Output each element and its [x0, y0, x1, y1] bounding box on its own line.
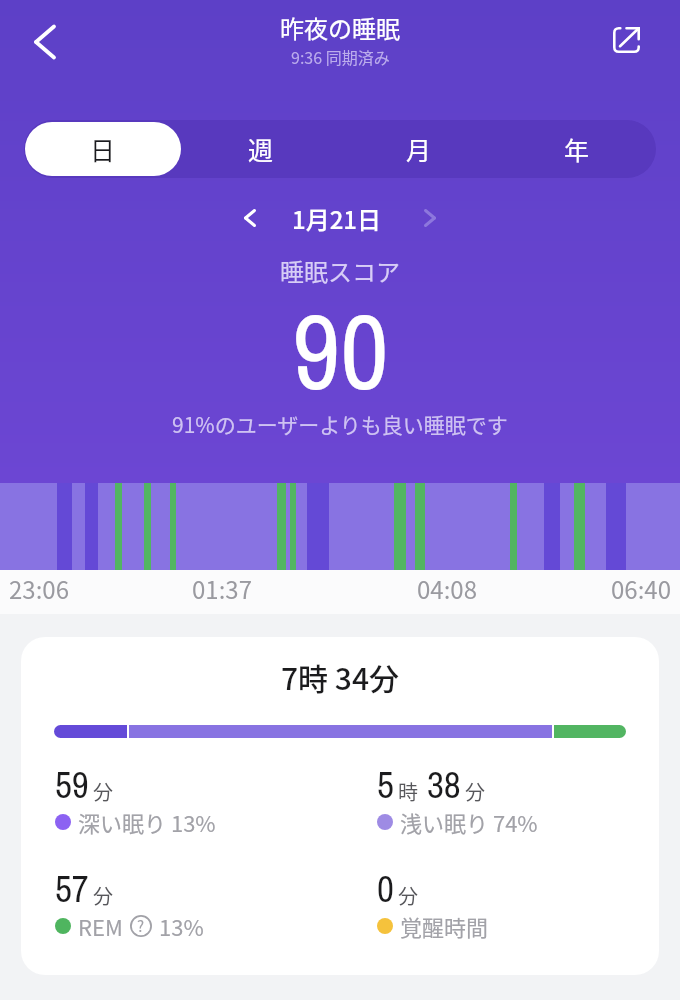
- staticText: 睡眠スコア: [280, 253, 400, 288]
- button[interactable]: 週: [183, 122, 339, 176]
- staticText: ?: [137, 915, 145, 937]
- staticText: 浅い眠り 74%: [400, 806, 538, 838]
- staticText: 分: [93, 881, 113, 910]
- staticText: 0: [377, 864, 394, 914]
- staticText: 04:08: [417, 571, 477, 606]
- staticText: 時: [398, 777, 418, 806]
- staticText: 7時 34分: [281, 655, 400, 698]
- button[interactable]: Back: [12, 10, 76, 74]
- staticText: 日: [90, 131, 116, 167]
- staticText: 年: [564, 131, 590, 167]
- staticText: 昨夜の睡眠: [280, 10, 400, 45]
- staticText: 06:40: [611, 571, 671, 606]
- staticText: 91%のユーザーよりも良い睡眠です: [172, 409, 508, 439]
- staticText: 59: [55, 760, 89, 810]
- staticText: 57: [55, 864, 89, 914]
- button[interactable]: Previous day: [228, 196, 272, 240]
- staticText: 分: [465, 777, 485, 806]
- button[interactable]: 日: [25, 122, 181, 176]
- staticText: 01:37: [192, 571, 252, 606]
- staticText: REM: [78, 910, 123, 942]
- button[interactable]: 月: [341, 122, 497, 176]
- staticText: 覚醒時間: [400, 910, 489, 942]
- button[interactable]: Share: [598, 12, 654, 68]
- staticText: 月: [406, 131, 432, 167]
- staticText: 深い眠り 13%: [78, 806, 216, 838]
- staticText: 13%: [159, 910, 204, 942]
- staticText: 分: [93, 777, 113, 806]
- staticText: 週: [248, 131, 274, 167]
- button[interactable]: Next day: [408, 196, 452, 240]
- staticText: 分: [398, 881, 418, 910]
- staticText: 1月21日: [292, 201, 382, 236]
- staticText: 5: [377, 760, 394, 810]
- staticText: 23:06: [9, 571, 69, 606]
- staticText: 9:36 同期済み: [291, 45, 390, 68]
- staticText: 38: [427, 760, 461, 810]
- staticText: 90: [292, 279, 389, 422]
- button[interactable]: 年: [499, 122, 655, 176]
